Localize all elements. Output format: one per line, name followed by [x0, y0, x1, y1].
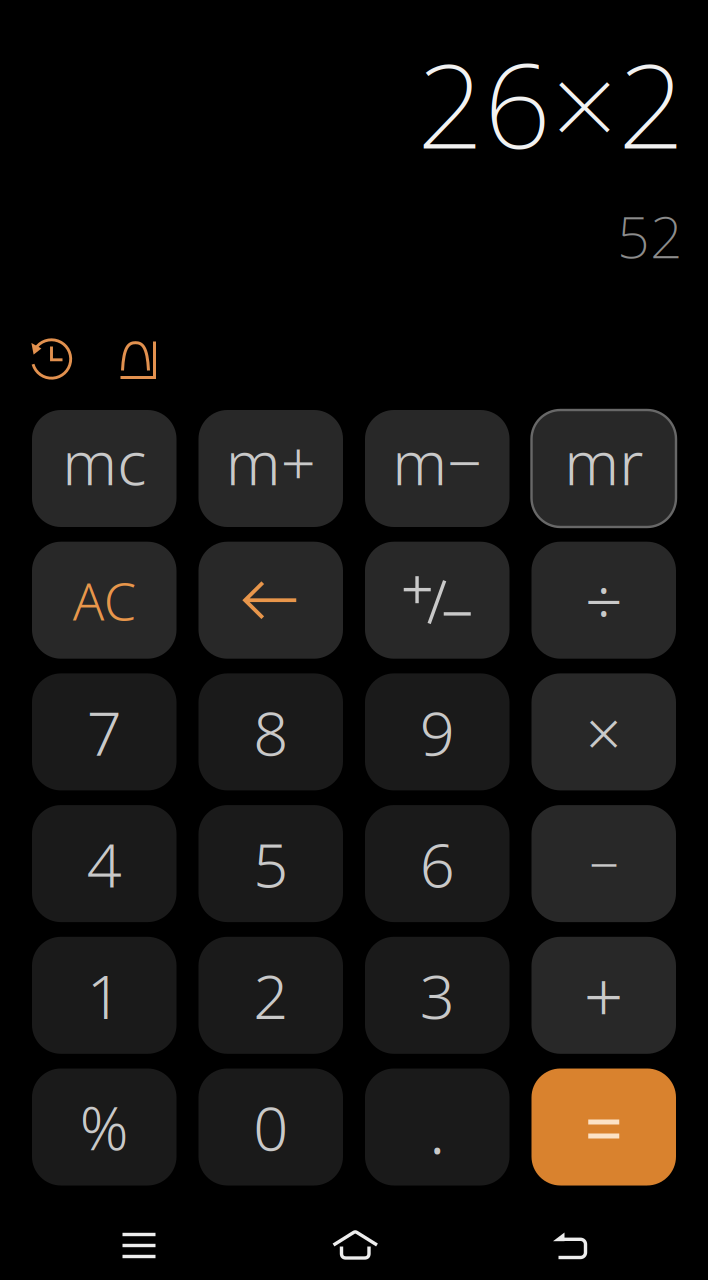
staticText: × [586, 690, 622, 773]
button[interactable]: 0 [198, 1068, 343, 1185]
staticText: 3 [420, 955, 455, 1036]
staticText: + [584, 949, 624, 1041]
staticText: 8 [253, 691, 288, 773]
button[interactable]: Equals [531, 1068, 676, 1185]
button[interactable]: 2 [198, 937, 343, 1054]
staticText: 2 [253, 955, 288, 1036]
button[interactable]: Plus minus [365, 542, 509, 659]
staticText: 6 [420, 823, 455, 904]
staticText: m+ [226, 421, 316, 502]
button[interactable]: ÷ [531, 542, 676, 659]
button[interactable]: Home [310, 1209, 400, 1280]
button[interactable]: mr [531, 410, 676, 527]
button[interactable]: 8 [198, 673, 343, 790]
staticText: 0 [253, 1086, 288, 1168]
button[interactable]: 1 [32, 937, 176, 1054]
staticText: 26×2 [417, 25, 685, 181]
button[interactable]: 5 [198, 805, 343, 922]
staticText: mr [564, 421, 643, 502]
button[interactable]: Backspace [198, 542, 343, 659]
button[interactable]: History [30, 338, 74, 382]
button[interactable]: . [365, 1068, 509, 1185]
staticText: 5 [253, 823, 288, 904]
button[interactable]: Recents [100, 1211, 178, 1280]
staticText: mc [62, 421, 146, 502]
button[interactable]: 9 [365, 673, 509, 790]
button[interactable]: 7 [32, 673, 176, 790]
button[interactable]: AC [32, 542, 176, 659]
button[interactable]: m+ [198, 410, 343, 527]
staticText: . [429, 1081, 446, 1173]
staticText: 1 [87, 955, 122, 1036]
button[interactable]: m− [365, 410, 509, 527]
button[interactable]: 6 [365, 805, 509, 922]
staticText: AC [73, 566, 136, 635]
staticText: − [589, 828, 619, 899]
staticText: 4 [87, 823, 122, 904]
button[interactable]: × [531, 673, 676, 790]
staticText: m− [392, 421, 482, 502]
button[interactable]: − [531, 805, 676, 922]
staticText: ÷ [585, 556, 623, 644]
button[interactable]: 3 [365, 937, 509, 1054]
button[interactable]: 4 [32, 805, 176, 922]
button[interactable]: Functions [120, 341, 158, 379]
button[interactable]: % [32, 1068, 176, 1185]
staticText: 7 [87, 691, 122, 773]
button[interactable]: + [531, 937, 676, 1054]
staticText: 52 [617, 198, 683, 274]
staticText: 9 [420, 691, 455, 773]
button[interactable]: mc [32, 410, 176, 527]
staticText: % [80, 1087, 129, 1167]
button[interactable]: Back [531, 1210, 609, 1280]
